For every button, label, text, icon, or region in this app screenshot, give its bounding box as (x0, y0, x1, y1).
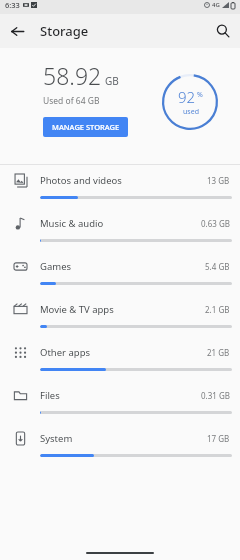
staticText: 2.1 GB (205, 304, 230, 315)
staticText: MANAGE STORAGE (52, 122, 120, 132)
button[interactable]: MANAGE STORAGE (43, 117, 128, 137)
staticText: 17 GB (207, 433, 230, 444)
staticText: Used of 64 GB (43, 95, 100, 107)
staticText: 21 GB (207, 347, 230, 358)
button[interactable]: Other apps (0, 337, 240, 380)
button[interactable]: Music & audio (0, 208, 240, 251)
staticText: 92 (178, 87, 196, 107)
staticText: System (40, 432, 73, 445)
button[interactable]: Search (206, 14, 240, 48)
staticText: 0.31 GB (201, 390, 230, 401)
staticText: GB (105, 74, 119, 88)
staticText: Movie & TV apps (40, 303, 114, 316)
staticText: 5.4 GB (205, 261, 230, 272)
staticText: 6:33 (5, 0, 20, 10)
staticText: 58.92 (43, 60, 102, 91)
staticText: used (183, 107, 199, 117)
button[interactable]: System (0, 423, 240, 466)
staticText: Photos and videos (40, 174, 122, 187)
button[interactable]: Files (0, 380, 240, 423)
staticText: Music & audio (40, 217, 104, 230)
staticText: Files (40, 389, 60, 402)
staticText: 13 GB (207, 175, 230, 186)
staticText: 0.63 GB (201, 218, 230, 229)
staticText: 4G (212, 1, 220, 9)
staticText: Games (40, 260, 72, 273)
button[interactable]: Movie & TV apps (0, 294, 240, 337)
staticText: Other apps (40, 346, 91, 359)
button[interactable]: Photos and videos (0, 165, 240, 208)
button[interactable]: Games (0, 251, 240, 294)
button[interactable]: Back (0, 14, 34, 48)
staticText: % (197, 90, 203, 100)
staticText: Storage (40, 22, 89, 40)
